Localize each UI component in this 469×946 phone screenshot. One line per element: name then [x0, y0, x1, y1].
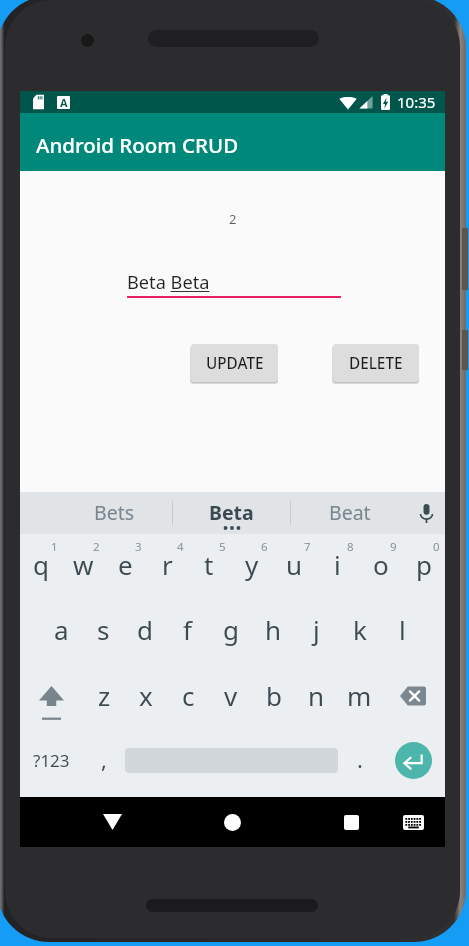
staticText: t [204, 547, 214, 582]
staticText: 10:35 [397, 92, 436, 112]
staticText: A [60, 96, 68, 108]
button[interactable]: 2 [62, 534, 104, 600]
button[interactable]: g [209, 600, 252, 666]
staticText: Beta Beta [127, 270, 210, 295]
button[interactable]: Beat [291, 492, 408, 534]
staticText: Android Room CRUD [36, 131, 239, 159]
button[interactable]: . [338, 732, 381, 797]
staticText: w [73, 547, 94, 582]
button[interactable]: Backspace [381, 666, 445, 732]
button[interactable]: b [252, 666, 295, 732]
button[interactable]: f [166, 600, 209, 666]
staticText: k [353, 612, 367, 647]
staticText: o [373, 547, 389, 582]
staticText: 7 [304, 539, 311, 555]
staticText: Beat [329, 499, 371, 526]
staticText: l [399, 612, 406, 647]
staticText: 5 [219, 539, 226, 555]
button[interactable]: d [124, 600, 166, 666]
button[interactable]: m [338, 666, 381, 732]
staticText: i [334, 547, 341, 582]
staticText: z [98, 678, 111, 713]
staticText: n [308, 678, 325, 713]
staticText: DELETE [349, 353, 403, 374]
staticText: m [347, 678, 372, 713]
staticText: s [97, 612, 110, 647]
button[interactable]: l [381, 600, 424, 666]
staticText: 4 [177, 539, 184, 555]
staticText: Beta [209, 499, 254, 526]
button[interactable]: h [252, 600, 295, 666]
staticText: q [33, 547, 49, 582]
staticText: Bets [94, 499, 135, 526]
button[interactable]: j [295, 600, 338, 666]
staticText: 2 [229, 210, 237, 228]
staticText: ?123 [33, 749, 70, 772]
staticText: , [101, 744, 107, 774]
staticText: e [118, 547, 133, 582]
button[interactable]: 7 [273, 534, 316, 600]
button[interactable]: Home [223, 797, 242, 847]
button[interactable]: Beta [173, 492, 290, 534]
button[interactable]: n [295, 666, 338, 732]
staticText: c [182, 678, 195, 713]
staticText: 2 [93, 539, 100, 555]
staticText: p [416, 547, 432, 582]
staticText: v [224, 678, 238, 713]
button[interactable]: 6 [230, 534, 273, 600]
button[interactable]: Space [125, 732, 338, 797]
staticText: f [183, 612, 192, 647]
staticText: y [245, 547, 259, 582]
staticText: x [139, 678, 153, 713]
staticText: 9 [390, 539, 397, 555]
button[interactable]: Recents [342, 797, 360, 847]
button[interactable]: x [125, 666, 167, 732]
staticText: 1 [51, 539, 58, 555]
button[interactable]: 9 [359, 534, 402, 600]
button[interactable]: z [83, 666, 125, 732]
button[interactable]: Android Room CRUD [20, 113, 445, 171]
button[interactable]: 0 [402, 534, 445, 600]
button[interactable]: 3 [104, 534, 146, 600]
staticText: j [313, 612, 320, 647]
staticText: 3 [135, 539, 142, 555]
button[interactable]: Shift [20, 666, 83, 732]
button[interactable]: Voice input [408, 492, 445, 534]
button[interactable]: 1 [20, 534, 62, 600]
button[interactable]: v [209, 666, 252, 732]
button[interactable]: ?123 [20, 732, 83, 797]
button[interactable]: k [338, 600, 381, 666]
staticText: h [265, 612, 282, 647]
staticText: g [223, 612, 239, 647]
button[interactable]: 5 [188, 534, 230, 600]
button[interactable]: DELETE [333, 344, 419, 382]
staticText: 6 [261, 539, 268, 555]
staticText: r [162, 547, 173, 582]
button[interactable]: UPDATE [191, 344, 278, 382]
staticText: d [137, 612, 153, 647]
button[interactable]: Bets [56, 492, 172, 534]
staticText: 0 [433, 539, 440, 555]
button[interactable]: , [83, 732, 125, 797]
button[interactable]: Back [102, 797, 122, 847]
staticText: u [286, 547, 303, 582]
button[interactable]: c [167, 666, 209, 732]
button[interactable]: Switch keyboard [402, 797, 424, 847]
staticText: . [357, 744, 363, 774]
staticText: b [266, 678, 282, 713]
staticText: UPDATE [206, 353, 264, 374]
button[interactable]: a [40, 600, 82, 666]
staticText: 8 [347, 539, 354, 555]
button[interactable]: 4 [146, 534, 188, 600]
button[interactable]: Enter [381, 732, 445, 797]
button[interactable]: s [82, 600, 124, 666]
button[interactable]: 8 [316, 534, 359, 600]
staticText: a [54, 612, 69, 647]
